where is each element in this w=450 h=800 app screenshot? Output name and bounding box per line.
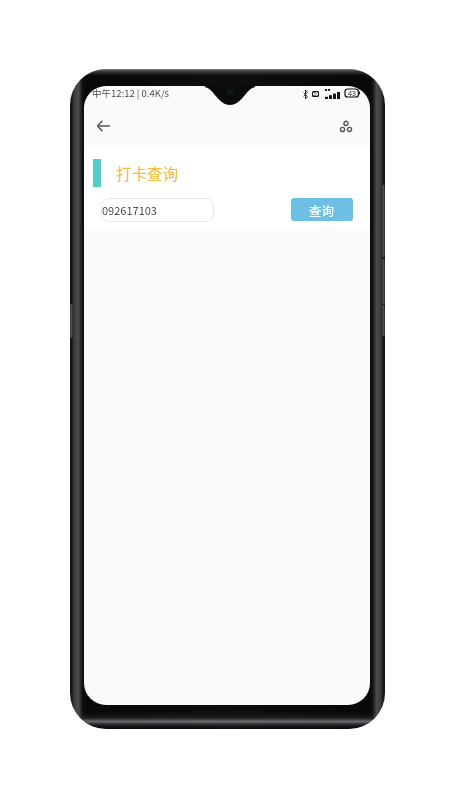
staticText: 中午12:12 | 0.4K/s [92, 86, 170, 100]
staticText: 查询 [309, 201, 335, 219]
button[interactable]: 查询 [291, 198, 353, 221]
button[interactable]: More options [333, 113, 359, 139]
staticText: 092617103 [102, 202, 157, 218]
staticText: 打卡查询 [116, 162, 179, 184]
staticText: 43 [348, 89, 357, 97]
button[interactable]: 092617103 [101, 198, 214, 222]
button[interactable]: Back [90, 113, 116, 139]
